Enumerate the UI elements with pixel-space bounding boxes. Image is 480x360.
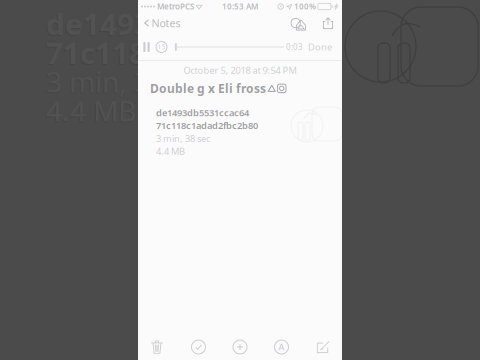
button[interactable]: Pause (138, 38, 153, 56)
button[interactable]: Checklist (178, 336, 219, 358)
staticText: 10:53 AM (222, 1, 258, 12)
staticText: 15 (157, 43, 165, 51)
button[interactable]: Add photo (287, 12, 317, 33)
button[interactable]: Share (317, 13, 339, 33)
staticText: 71c118e (45, 34, 163, 73)
button[interactable]: Done (303, 37, 342, 57)
button[interactable]: New note (302, 336, 344, 358)
staticText: MetroPCS (155, 1, 194, 12)
staticText: 71c118c1adad2fbc2b80 (156, 119, 258, 132)
staticText: October 5, 2018 at 9:54 PM (183, 64, 296, 76)
staticText: de1493db5531ccac64 (156, 106, 249, 119)
staticText: de1493 (45, 5, 150, 44)
staticText: 3 min, 3 (46, 63, 150, 100)
staticText: 71c118e (46, 33, 164, 72)
button[interactable]: Add attachment (219, 336, 261, 358)
staticText: Double g x Eli fross (150, 80, 266, 96)
staticText: 100% (294, 1, 316, 12)
staticText: 4.4 MB (156, 145, 185, 157)
staticText: Notes (151, 16, 180, 30)
staticText: 3 min, 3 (45, 64, 149, 101)
staticText: 0:03 (286, 42, 303, 52)
button[interactable]: Delete note (136, 336, 178, 358)
staticText: 3 min, 38 sec (156, 132, 210, 144)
button[interactable]: Notes (141, 11, 183, 35)
staticText: Done (308, 41, 332, 53)
button[interactable]: Skip back 15 seconds (153, 38, 170, 55)
staticText: de1493 (46, 4, 151, 43)
button[interactable]: Markup (261, 336, 302, 358)
